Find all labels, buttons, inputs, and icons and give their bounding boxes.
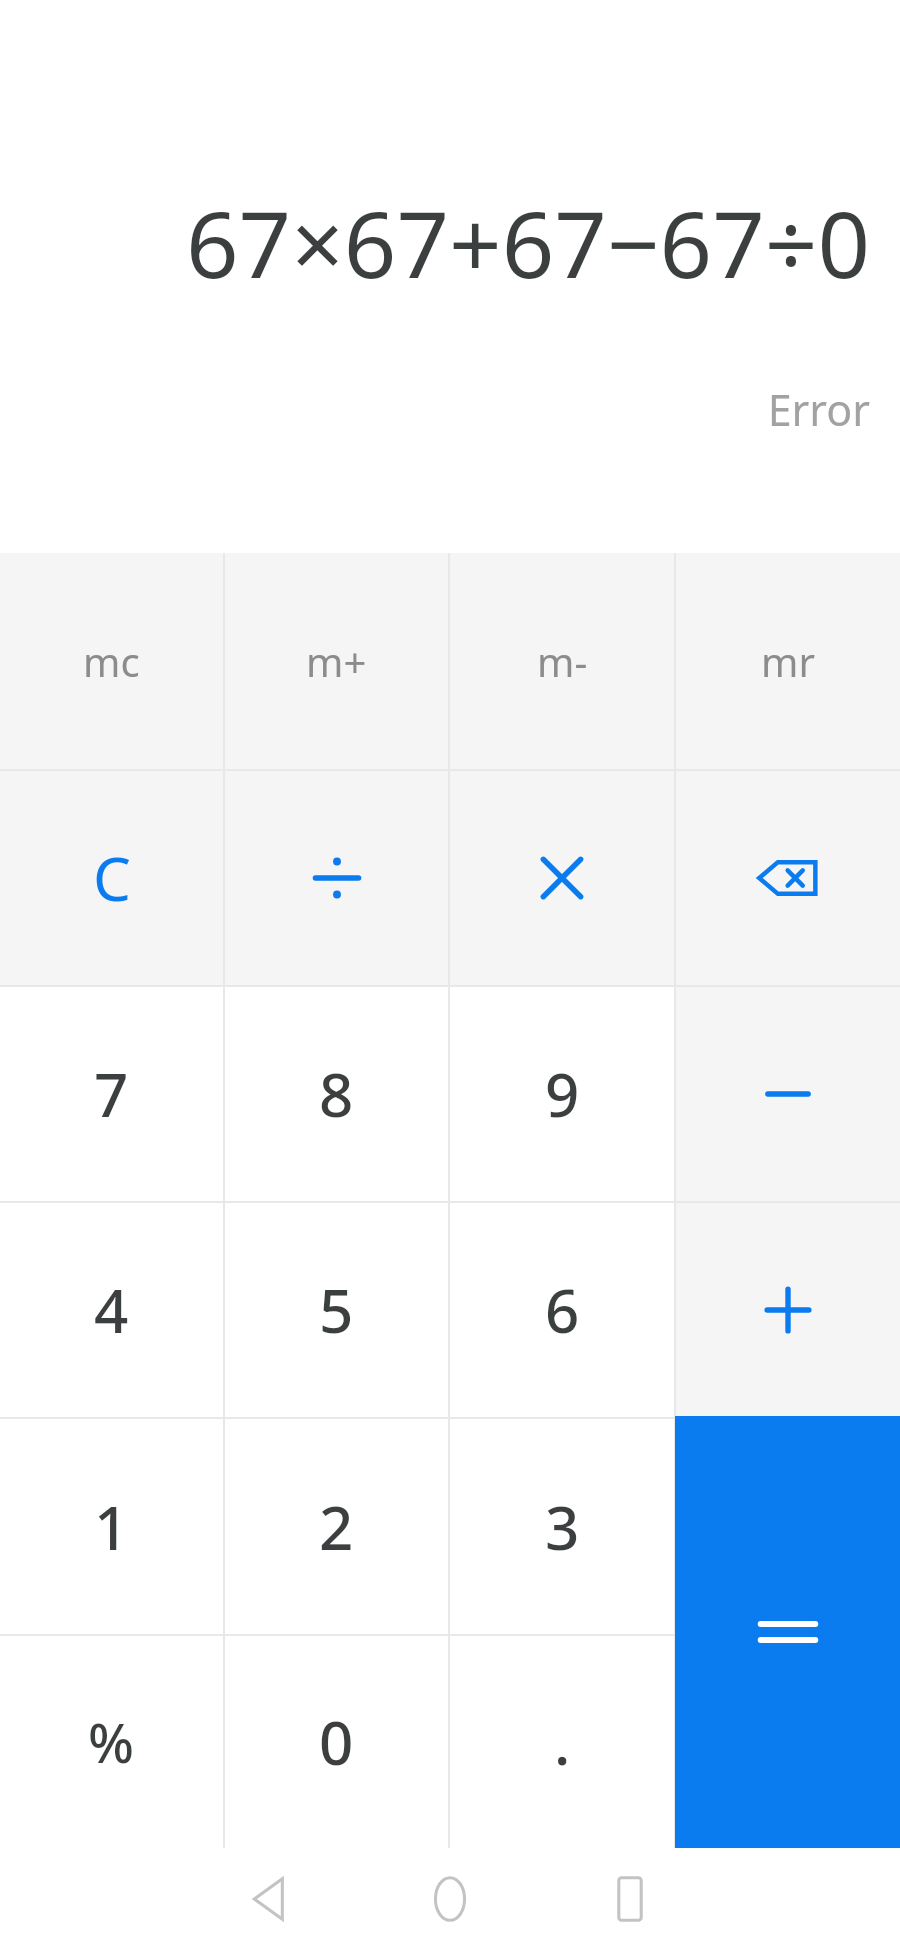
button[interactable]: m+	[225, 553, 448, 769]
button[interactable]: 1	[0, 1419, 223, 1634]
staticText: 5	[319, 1269, 354, 1351]
button[interactable]: Recents	[582, 1851, 678, 1947]
button[interactable]: Home	[402, 1851, 498, 1947]
button[interactable]: Divide	[225, 771, 448, 985]
staticText: 7	[94, 1053, 129, 1135]
button[interactable]: Backspace	[676, 771, 900, 985]
button[interactable]: Minus	[676, 987, 900, 1201]
staticText: 0	[319, 1701, 354, 1783]
button[interactable]: 2	[225, 1419, 448, 1634]
button[interactable]: 8	[225, 987, 448, 1201]
button[interactable]: 9	[450, 987, 674, 1201]
staticText: 2	[319, 1486, 354, 1568]
staticText: 9	[545, 1053, 580, 1135]
staticText: 8	[319, 1053, 354, 1135]
staticText: Error	[0, 380, 870, 439]
button[interactable]: 4	[0, 1203, 223, 1417]
other: Equals	[753, 1597, 823, 1667]
staticText: 3	[545, 1486, 580, 1568]
button[interactable]: 0	[225, 1636, 448, 1848]
button[interactable]: mc	[0, 553, 223, 769]
staticText: %	[88, 1705, 135, 1779]
button[interactable]: %	[0, 1636, 223, 1848]
button[interactable]: C	[0, 771, 223, 985]
button[interactable]: Multiply	[450, 771, 674, 985]
staticText: m+	[306, 634, 367, 688]
button[interactable]: .	[450, 1636, 674, 1848]
staticText: 6	[545, 1269, 580, 1351]
staticText: 4	[94, 1269, 129, 1351]
staticText: mr	[761, 634, 815, 688]
staticText: m-	[537, 634, 588, 688]
button[interactable]: m-	[450, 553, 674, 769]
staticText: 67×67+67−67÷0	[16, 180, 870, 305]
button[interactable]: Equals	[675, 1416, 900, 1848]
button[interactable]: mr	[676, 553, 900, 769]
button[interactable]: 3	[450, 1419, 674, 1634]
button[interactable]: 7	[0, 987, 223, 1201]
button[interactable]: 6	[450, 1203, 674, 1417]
button[interactable]: Back	[222, 1851, 318, 1947]
button[interactable]: 5	[225, 1203, 448, 1417]
button[interactable]: Plus	[676, 1203, 900, 1417]
staticText: .	[554, 1701, 571, 1783]
staticText: mc	[83, 634, 140, 688]
staticText: C	[93, 837, 131, 919]
staticText: 1	[94, 1486, 129, 1568]
